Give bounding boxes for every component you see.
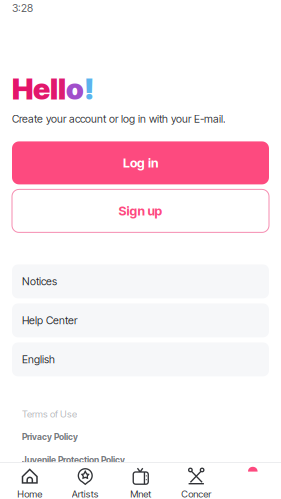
button[interactable]: Artists (57, 462, 113, 499)
staticText: l (58, 71, 66, 106)
staticText: Terms of Use (22, 408, 77, 420)
button[interactable]: English (12, 342, 269, 376)
button[interactable]: Terms of Use (22, 408, 281, 419)
staticText: Help Center (22, 314, 77, 327)
button[interactable]: Juvenile Protection Policy (22, 454, 281, 465)
button[interactable]: Mnet (113, 462, 168, 499)
staticText: Log in (123, 155, 158, 170)
staticText: Artists (72, 488, 99, 499)
button[interactable]: Notices (12, 264, 269, 298)
staticText: Mnet (130, 488, 151, 499)
staticText: Notices (22, 275, 57, 288)
staticText: Privacy Policy (22, 432, 78, 442)
button[interactable]: Sign up (12, 189, 269, 232)
staticText: English (22, 353, 55, 366)
button[interactable]: Log in (12, 141, 269, 184)
staticText: Sign up (118, 203, 162, 218)
staticText: 3:28 (12, 1, 33, 14)
staticText: l (50, 71, 58, 106)
button[interactable]: Concer (168, 462, 224, 499)
button[interactable]: Home (2, 462, 57, 499)
staticText: e (33, 71, 50, 106)
staticText: Concer (181, 488, 211, 499)
staticText: ! (84, 71, 94, 106)
staticText: Create your account or log in with your … (12, 112, 226, 125)
staticText: Juvenile Protection Policy (22, 455, 125, 465)
button[interactable]: Privacy Policy (22, 431, 281, 442)
staticText: o (66, 71, 84, 106)
button[interactable]: Help Center (12, 303, 269, 337)
staticText: Home (17, 488, 42, 499)
staticText: H (12, 71, 33, 106)
